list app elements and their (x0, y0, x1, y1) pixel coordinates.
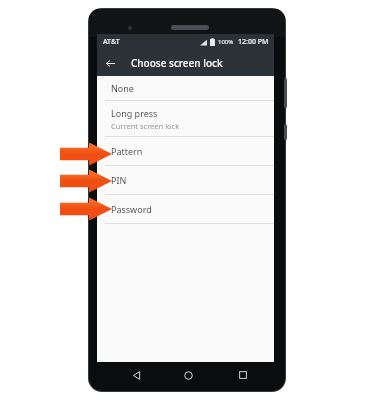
button[interactable]: Back (121, 364, 151, 386)
button[interactable]: Home (173, 364, 203, 386)
button[interactable]: Pattern (97, 137, 274, 165)
staticText: None (111, 82, 134, 94)
staticText: Choose screen lock (131, 56, 223, 70)
staticText: Password (111, 203, 152, 215)
staticText: Pattern (111, 145, 143, 157)
button[interactable]: Recent apps (228, 364, 258, 386)
button[interactable]: Password (97, 195, 274, 223)
button[interactable]: None (97, 76, 274, 100)
staticText: 12:00 PM (238, 37, 269, 47)
staticText: PIN (111, 174, 127, 186)
staticText: 100% (218, 38, 234, 46)
staticText: Current screen lock (111, 121, 180, 131)
button[interactable]: PIN (97, 166, 274, 194)
button[interactable]: Back (97, 50, 123, 76)
staticText: Long press (111, 107, 158, 119)
button[interactable]: Long press (97, 101, 274, 136)
staticText: AT&T (103, 37, 120, 47)
